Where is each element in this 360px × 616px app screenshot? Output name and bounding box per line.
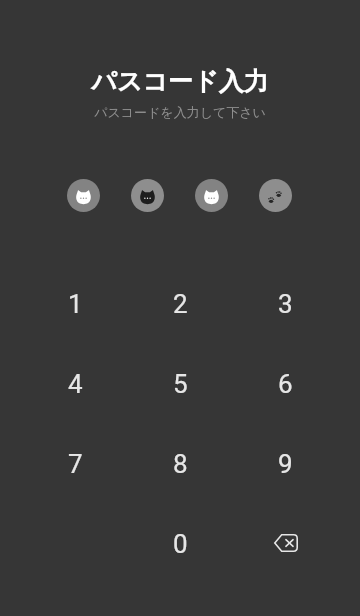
staticText: 9 xyxy=(278,449,293,479)
button[interactable]: 6 xyxy=(233,344,338,424)
staticText: 7 xyxy=(68,449,83,479)
button[interactable]: 9 xyxy=(233,424,338,504)
button[interactable]: 4 xyxy=(22,344,128,424)
staticText: 4 xyxy=(68,369,83,399)
button[interactable]: 3 xyxy=(233,264,338,344)
button[interactable]: 2 xyxy=(128,264,233,344)
staticText: 5 xyxy=(173,369,188,399)
staticText: 1 xyxy=(68,289,83,319)
button[interactable]: 1 xyxy=(22,264,128,344)
button[interactable]: 7 xyxy=(22,424,128,504)
button[interactable]: 0 xyxy=(128,504,233,584)
staticText: 3 xyxy=(278,289,293,319)
staticText: 2 xyxy=(173,289,188,319)
button[interactable]: 8 xyxy=(128,424,233,504)
staticText: パスコードを入力して下さい xyxy=(94,104,266,120)
staticText: パスコード入力 xyxy=(91,66,269,97)
button[interactable]: 5 xyxy=(128,344,233,424)
button[interactable]: Delete xyxy=(233,504,338,584)
staticText: 6 xyxy=(278,369,293,399)
staticText: 0 xyxy=(173,529,188,559)
staticText: 8 xyxy=(173,449,188,479)
